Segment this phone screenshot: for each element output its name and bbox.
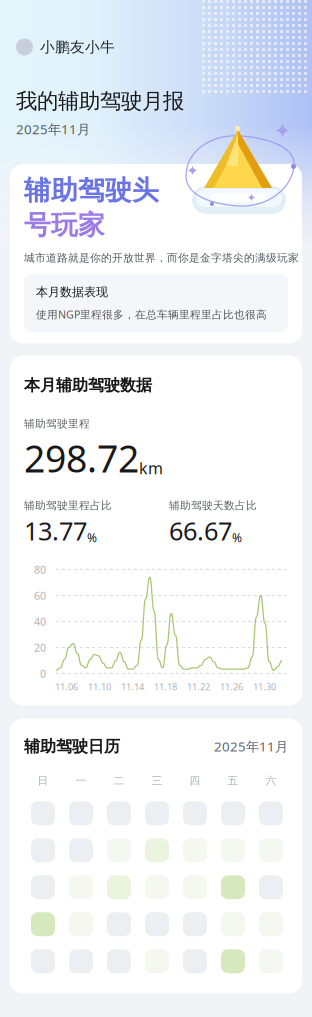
staticText: 我的辅助驾驶月报	[16, 88, 184, 114]
staticText: 60	[34, 588, 46, 603]
staticText: 辅助驾驶天数占比	[169, 499, 257, 512]
button[interactable]: 小鹏友小牛	[0, 35, 125, 59]
staticText: 11.14	[121, 680, 144, 693]
staticText: 2025年11月	[214, 737, 288, 755]
staticText: 80	[34, 562, 46, 577]
staticText: 城市道路就是你的开放世界，而你是金字塔尖的满级玩家	[24, 251, 299, 264]
staticText: 使用NGP里程很多，在总车辆里程里占比也很高	[36, 307, 267, 321]
staticText: 一	[75, 774, 86, 787]
staticText: 六	[265, 774, 276, 787]
staticText: 40	[34, 614, 46, 629]
staticText: 辅助驾驶里程	[24, 417, 90, 430]
staticText: 三	[151, 774, 162, 787]
staticText: %	[87, 530, 97, 545]
staticText: 二	[113, 774, 124, 787]
staticText: 日	[37, 774, 48, 787]
staticText: 11.18	[154, 680, 177, 693]
staticText: 13.77	[24, 514, 87, 547]
staticText: 11.26	[220, 680, 243, 693]
staticText: 五	[227, 774, 238, 787]
staticText: 辅助驾驶日历	[24, 736, 120, 756]
staticText: 辅助驾驶里程占比	[24, 499, 112, 512]
staticText: 四	[189, 774, 200, 787]
staticText: 号玩家	[24, 209, 105, 241]
staticText: %	[232, 530, 242, 545]
staticText: 11.10	[88, 680, 111, 693]
staticText: 11.22	[187, 680, 210, 693]
staticText: 20	[34, 640, 46, 655]
staticText: 298.72	[24, 433, 139, 483]
staticText: 本月辅助驾驶数据	[24, 375, 152, 395]
staticText: 辅助驾驶头	[24, 174, 159, 207]
staticText: 本月数据表现	[36, 284, 108, 299]
staticText: 11.06	[55, 680, 78, 693]
staticText: km	[139, 457, 163, 479]
staticText: 66.67	[169, 514, 232, 547]
staticText: 2025年11月	[16, 120, 90, 138]
staticText: 0	[40, 666, 46, 681]
staticText: 小鹏友小牛	[40, 38, 115, 56]
staticText: 11.30	[253, 680, 276, 693]
